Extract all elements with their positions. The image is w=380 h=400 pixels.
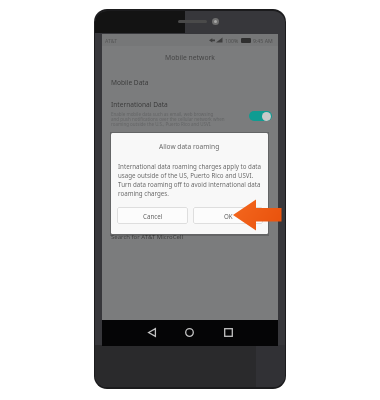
- button[interactable]: Cancel: [117, 207, 188, 224]
- staticText: Allow data roaming: [159, 142, 220, 151]
- staticText: Mobile Data: [111, 78, 149, 87]
- button[interactable]: Home: [179, 322, 199, 344]
- button[interactable]: International Data: [102, 94, 278, 128]
- button[interactable]: Mobile Data: [102, 71, 278, 94]
- button[interactable]: OK: [193, 207, 263, 224]
- staticText: OK: [224, 212, 233, 220]
- staticText: Mobile network: [165, 53, 215, 62]
- staticText: 9:45 AM: [253, 37, 273, 44]
- staticText: Search for AT&T MicroCell: [111, 233, 183, 241]
- staticText: AT&T: [105, 37, 118, 44]
- staticText: International Data: [111, 100, 168, 109]
- button[interactable]: Recent apps: [218, 322, 238, 344]
- staticText: International data roaming charges apply…: [118, 162, 262, 198]
- button[interactable]: Back: [142, 322, 162, 344]
- staticText: Cancel: [143, 212, 163, 220]
- staticText: Enable mobile data such as email, web br…: [111, 111, 225, 127]
- staticText: 100%: [225, 37, 239, 44]
